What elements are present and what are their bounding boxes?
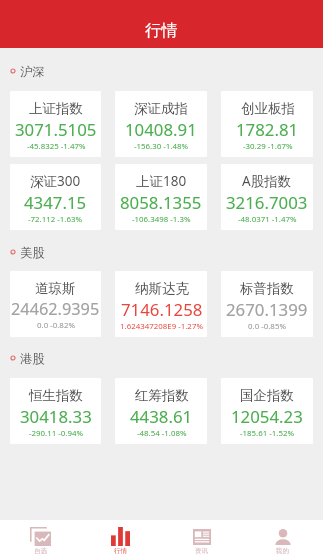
button[interactable]: 纳斯达克 xyxy=(115,271,207,337)
staticText: -106.3498 -1.3% xyxy=(132,214,191,225)
staticText: 自选 xyxy=(34,547,47,555)
staticText: 资讯 xyxy=(195,547,208,555)
staticText: -185.61 -1.52% xyxy=(240,428,295,439)
button[interactable]: 深证300 xyxy=(10,164,101,230)
staticText: 上证180 xyxy=(136,172,187,190)
staticText: 0.0 -0.85% xyxy=(248,321,286,332)
staticText: 3071.5105 xyxy=(15,118,97,141)
button[interactable]: 深证成指 xyxy=(115,91,207,157)
staticText: A股指数 xyxy=(242,172,292,190)
button[interactable]: 国企指数 xyxy=(221,378,313,444)
staticText: 30418.33 xyxy=(20,405,92,428)
staticText: 美股 xyxy=(20,245,45,260)
staticText: 国企指数 xyxy=(240,387,294,404)
staticText: -30.29 -1.67% xyxy=(243,141,293,152)
staticText: 道琼斯 xyxy=(35,280,76,297)
staticText: 深证成指 xyxy=(134,100,188,117)
staticText: 纳斯达克 xyxy=(135,280,189,297)
staticText: 0.0 -0.82% xyxy=(37,320,75,331)
staticText: -45.8325 -1.47% xyxy=(27,141,86,152)
staticText: -72.112 -1.63% xyxy=(28,214,83,225)
staticText: 行情 xyxy=(145,20,178,40)
button[interactable]: 上证指数 xyxy=(10,91,101,157)
staticText: 2670.1399 xyxy=(226,298,308,321)
staticText: -48.54 -1.08% xyxy=(137,428,187,439)
button[interactable]: 标普指数 xyxy=(221,271,313,337)
button[interactable]: 资讯 xyxy=(161,520,242,556)
staticText: 1.624347208E9 -1.27% xyxy=(120,321,203,332)
staticText: 创业板指 xyxy=(241,100,295,117)
staticText: -290.11 -0.94% xyxy=(29,428,84,439)
button[interactable]: 红筹指数 xyxy=(115,378,207,444)
staticText: 12054.23 xyxy=(231,405,303,428)
staticText: 1782.81 xyxy=(236,118,299,141)
button[interactable]: 创业板指 xyxy=(221,91,313,157)
staticText: 3216.7003 xyxy=(226,191,308,214)
button[interactable]: 行情 xyxy=(80,520,161,556)
staticText: 沪深 xyxy=(20,64,45,79)
staticText: 4347.15 xyxy=(24,191,87,214)
button[interactable]: 自选 xyxy=(0,520,80,556)
staticText: 港股 xyxy=(20,351,45,366)
staticText: 8058.1355 xyxy=(120,191,202,214)
staticText: 24462.9395 xyxy=(11,298,100,320)
button[interactable]: 恒生指数 xyxy=(10,378,101,444)
staticText: 4438.61 xyxy=(130,405,193,428)
staticText: 7146.1258 xyxy=(121,298,203,321)
staticText: -48.0371 -1.47% xyxy=(238,214,297,225)
staticText: 我的 xyxy=(276,547,289,555)
staticText: 上证指数 xyxy=(29,100,83,117)
staticText: 行情 xyxy=(114,547,127,555)
staticText: 标普指数 xyxy=(240,280,294,297)
staticText: 10408.91 xyxy=(125,118,197,141)
button[interactable]: 我的 xyxy=(242,520,323,556)
staticText: -156.30 -1.48% xyxy=(134,141,189,152)
button[interactable]: A股指数 xyxy=(221,164,313,230)
button[interactable]: 道琼斯 xyxy=(10,271,101,337)
button[interactable]: 上证180 xyxy=(115,164,207,230)
staticText: 深证300 xyxy=(30,172,81,190)
staticText: 恒生指数 xyxy=(29,387,83,404)
staticText: 红筹指数 xyxy=(135,387,189,404)
